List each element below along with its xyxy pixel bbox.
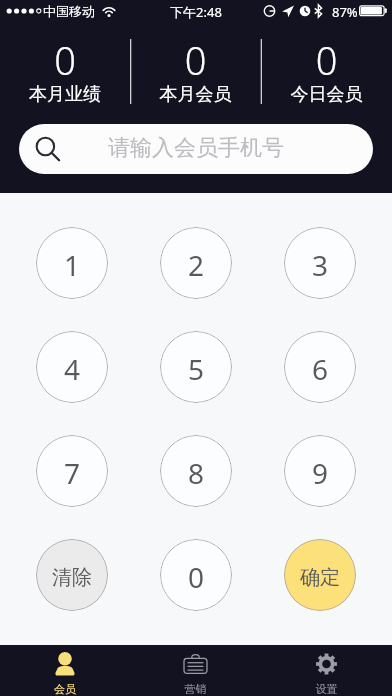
button[interactable]: 0 xyxy=(0,34,130,109)
staticText: 设置 xyxy=(261,682,392,696)
button[interactable]: 0 xyxy=(130,34,261,109)
button[interactable]: 请输入会员手机号 xyxy=(19,124,373,174)
button[interactable]: 4 xyxy=(36,331,108,403)
staticText: 本月业绩 xyxy=(0,83,130,106)
staticText: 中国移动 xyxy=(43,3,95,19)
button[interactable]: 8 xyxy=(160,435,232,507)
staticText: 2 xyxy=(188,246,205,284)
staticText: 会员 xyxy=(0,682,130,696)
staticText: 1 xyxy=(64,246,81,284)
button[interactable]: 确定 xyxy=(284,539,356,611)
staticText: 6 xyxy=(312,350,329,388)
staticText: 0 xyxy=(0,34,130,86)
staticText: 0 xyxy=(188,558,205,596)
button[interactable]: 7 xyxy=(36,435,108,507)
button[interactable]: 9 xyxy=(284,435,356,507)
button[interactable]: Settings xyxy=(261,645,392,696)
staticText: 7 xyxy=(64,454,81,492)
staticText: 87% xyxy=(332,3,358,21)
staticText: 本月会员 xyxy=(130,83,261,106)
staticText: 请输入会员手机号 xyxy=(19,134,373,162)
button[interactable]: Marketing xyxy=(130,645,261,696)
button[interactable]: Members xyxy=(0,645,130,696)
button[interactable]: 1 xyxy=(36,227,108,299)
button[interactable]: 0 xyxy=(261,34,392,109)
staticText: 8 xyxy=(188,454,205,492)
staticText: 确定 xyxy=(300,565,340,590)
staticText: 9 xyxy=(312,454,329,492)
staticText: 0 xyxy=(130,34,261,86)
staticText: 4 xyxy=(64,350,81,388)
staticText: 0 xyxy=(261,34,392,86)
button[interactable]: 5 xyxy=(160,331,232,403)
staticText: 营销 xyxy=(130,682,261,696)
button[interactable]: 3 xyxy=(284,227,356,299)
staticText: 清除 xyxy=(52,565,92,590)
staticText: 5 xyxy=(188,350,205,388)
staticText: 下午2:48 xyxy=(0,3,392,21)
button[interactable]: 清除 xyxy=(36,539,108,611)
staticText: 3 xyxy=(312,246,329,284)
button[interactable]: 0 xyxy=(160,539,232,611)
button[interactable]: 2 xyxy=(160,227,232,299)
staticText: 今日会员 xyxy=(261,83,392,106)
button[interactable]: 6 xyxy=(284,331,356,403)
